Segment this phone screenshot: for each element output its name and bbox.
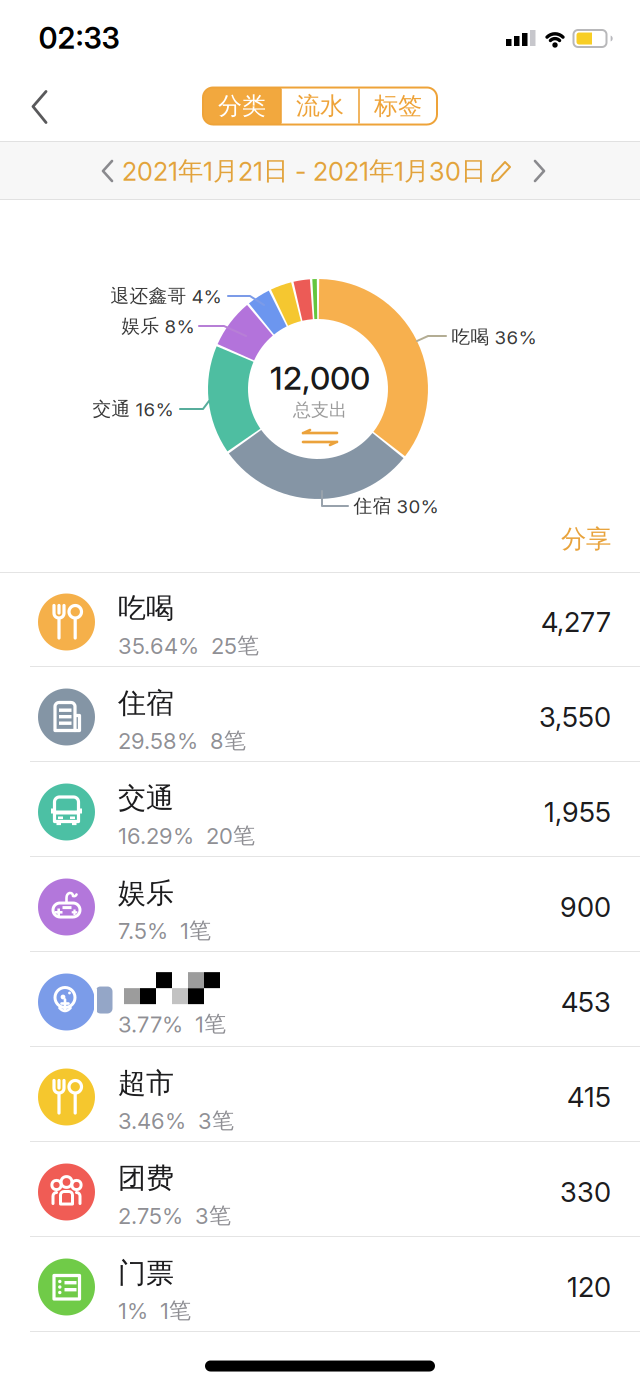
staticText: 330 (560, 1175, 611, 1209)
staticText: 900 (560, 890, 611, 924)
staticText: 标签 (374, 91, 422, 121)
staticText: 453 (561, 985, 611, 1019)
staticText: 住宿 30% (353, 494, 438, 518)
button[interactable]: Switch total (301, 430, 339, 446)
button[interactable]: 住宿 (0, 667, 640, 762)
staticText: 分享 (561, 523, 611, 555)
staticText: 门票 (118, 1255, 174, 1291)
staticText: 4,277 (541, 605, 611, 639)
button[interactable]: Next period (533, 159, 547, 183)
staticText: 415 (567, 1080, 611, 1114)
staticText: 分类 (218, 91, 266, 121)
staticText: 住宿 (118, 685, 174, 721)
button[interactable]: 3.77% 1笔 (0, 952, 640, 1047)
staticText: 交通 (118, 780, 174, 816)
staticText: 吃喝 (118, 590, 174, 626)
staticText: 流水 (296, 91, 344, 121)
staticText: 1,955 (544, 795, 611, 829)
staticText: 3,550 (539, 700, 611, 734)
button[interactable]: 分享 (561, 523, 611, 555)
button[interactable]: Edit date range (491, 159, 513, 183)
staticText: 总支出 (293, 399, 347, 421)
staticText: 娱乐 (118, 875, 174, 911)
staticText: 2.75% 3笔 (118, 1202, 231, 1229)
button[interactable]: 门票 (0, 1237, 640, 1332)
button[interactable]: Previous period (101, 159, 115, 183)
button[interactable]: 交通 (0, 762, 640, 857)
staticText: 娱乐 8% (121, 314, 194, 338)
staticText: 退还鑫哥 4% (110, 284, 221, 308)
staticText: 12,000 (270, 359, 370, 397)
staticText: 交通 16% (92, 397, 173, 421)
staticText: 1% 1笔 (118, 1297, 191, 1324)
button[interactable]: 团费 (0, 1142, 640, 1237)
staticText: 7.5% 1笔 (118, 917, 211, 944)
staticText: 2021年1月21日 - 2021年1月30日 (122, 155, 486, 187)
staticText: 团费 (118, 1160, 174, 1196)
staticText: 35.64% 25笔 (118, 632, 259, 659)
button[interactable]: 分类 (203, 87, 281, 124)
button[interactable]: Back (32, 89, 48, 124)
button[interactable]: 娱乐 (0, 857, 640, 952)
staticText: 02:33 (38, 20, 119, 56)
staticText: 16.29% 20笔 (118, 822, 255, 849)
staticText: 29.58% 8笔 (118, 727, 246, 754)
button[interactable]: 标签 (359, 87, 437, 124)
staticText: 超市 (118, 1065, 174, 1101)
button[interactable]: 流水 (281, 87, 359, 124)
staticText: 吃喝 36% (451, 325, 536, 349)
staticText: 120 (567, 1270, 611, 1304)
button[interactable]: 2021年1月21日 - 2021年1月30日 (122, 155, 486, 187)
staticText: 3.77% 1笔 (118, 1010, 226, 1038)
button[interactable]: 吃喝 (0, 572, 640, 667)
button[interactable]: 超市 (0, 1047, 640, 1142)
staticText: 3.46% 3笔 (118, 1107, 234, 1134)
